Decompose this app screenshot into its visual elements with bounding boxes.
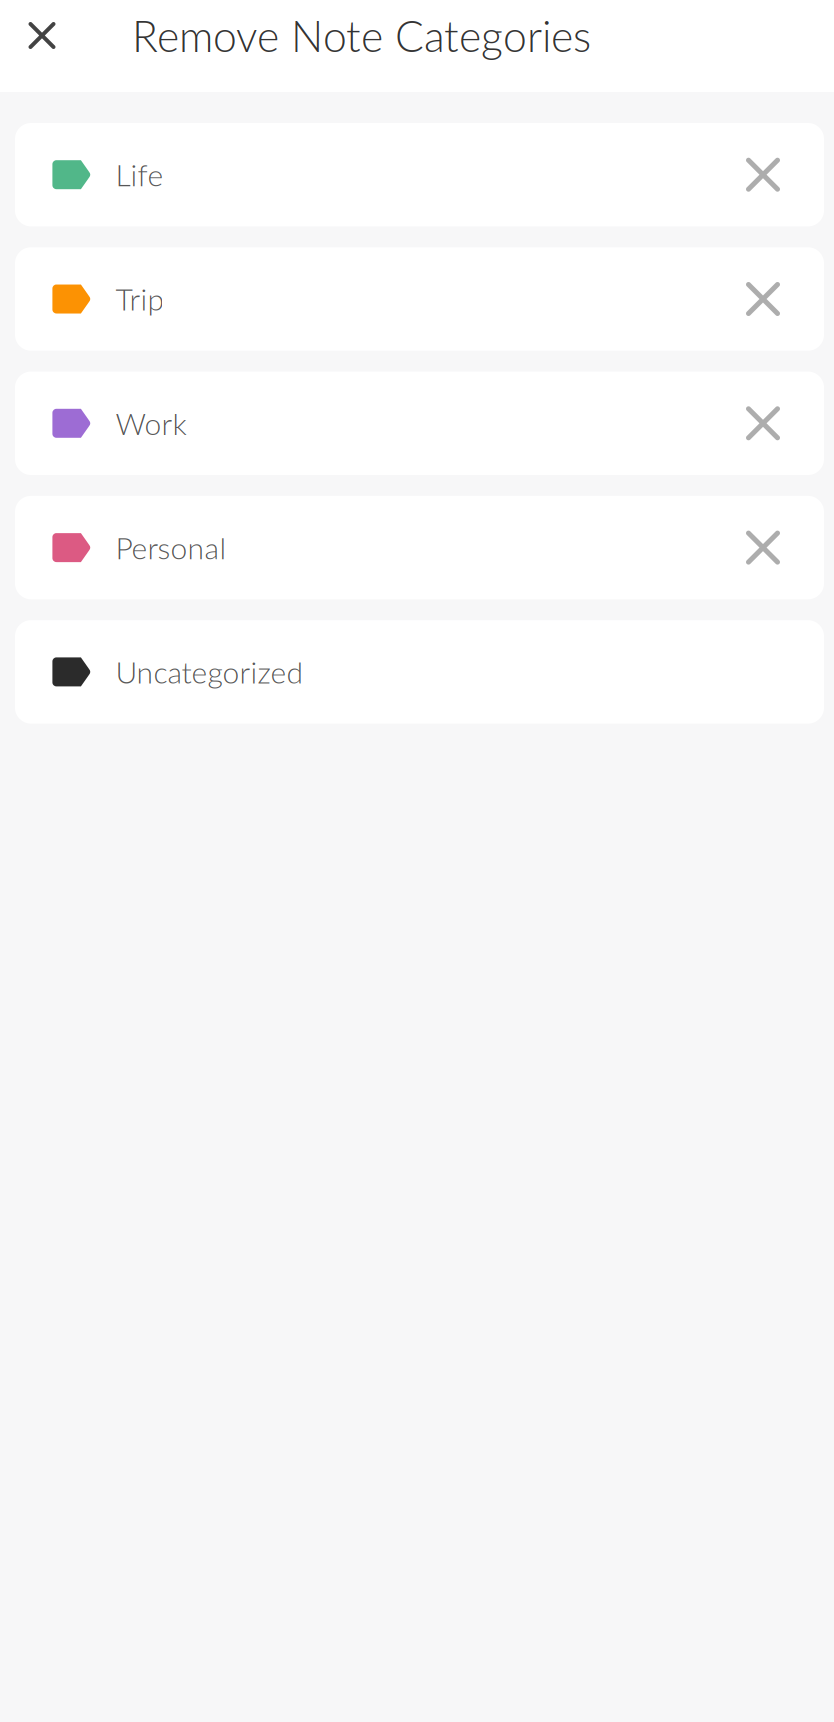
button[interactable]: Close: [14, 7, 70, 63]
button[interactable]: Remove Work: [746, 406, 780, 440]
staticText: Personal: [115, 530, 226, 566]
staticText: Work: [115, 405, 186, 441]
staticText: Trip: [115, 281, 164, 317]
button[interactable]: Remove Personal: [746, 531, 780, 565]
button[interactable]: Work: [15, 372, 824, 475]
button[interactable]: Life: [15, 123, 824, 226]
button[interactable]: Remove Life: [746, 158, 780, 192]
button[interactable]: Uncategorized: [15, 620, 824, 724]
staticText: Uncategorized: [115, 654, 303, 690]
button[interactable]: Personal: [15, 496, 824, 599]
button[interactable]: Trip: [15, 247, 824, 351]
staticText: Remove Note Categories: [132, 10, 591, 61]
button[interactable]: Remove Trip: [746, 282, 780, 316]
staticText: Life: [115, 157, 163, 193]
